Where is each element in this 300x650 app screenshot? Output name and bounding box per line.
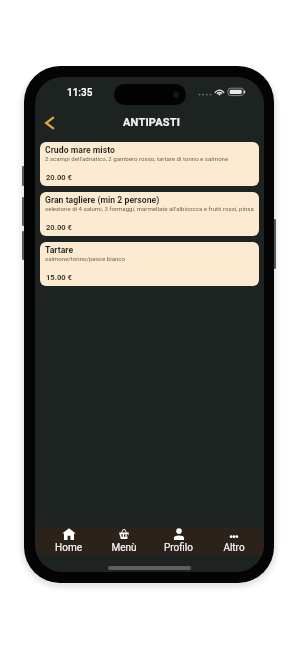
button[interactable]: Profilo [151,527,206,555]
staticText: selezione di 4 salumi, 3 formaggi, marme… [45,205,254,212]
button[interactable]: Altro [206,527,261,555]
staticText: salmone/tonno/pesce bianco [45,255,125,262]
button[interactable]: Gran tagliere (min 2 persone) [40,192,259,236]
staticText: Home [55,542,82,554]
staticText: Tartare [45,245,74,255]
button[interactable]: Crudo mare misto [40,142,259,186]
staticText: Profilo [164,542,193,554]
staticText: ANTIPASTI [123,116,181,129]
staticText: Menù [111,542,137,554]
staticText: 11:35 [67,87,93,99]
staticText: 2 scampi dell'adriatico, 2 gambero rosso… [45,155,229,162]
staticText: Crudo mare misto [45,145,115,155]
staticText: 15.00 € [46,273,72,282]
staticText: Altro [223,542,245,554]
button[interactable]: Back [37,110,63,136]
button[interactable]: Tartare [40,242,259,286]
button[interactable]: Menù [96,527,151,555]
button[interactable]: Home [40,527,96,555]
staticText: 20.00 € [46,223,72,232]
staticText: 20.00 € [46,173,72,182]
staticText: Gran tagliere (min 2 persone) [45,195,160,205]
